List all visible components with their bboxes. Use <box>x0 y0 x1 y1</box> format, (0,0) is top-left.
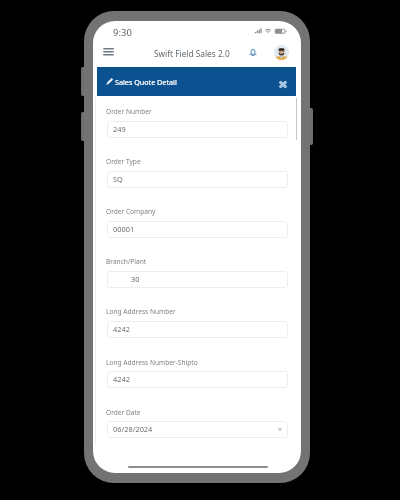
button[interactable]: 00001 <box>107 221 288 238</box>
button[interactable]: Menu <box>97 41 119 63</box>
staticText: × <box>278 425 283 435</box>
staticText: 06/28/2024 <box>113 424 153 434</box>
staticText: Long Address Number-Shipto <box>106 358 198 367</box>
staticText: Sales Quote Detail <box>115 77 177 87</box>
staticText: Order Type <box>106 157 141 166</box>
staticText: 249 <box>113 124 126 134</box>
staticText: Order Company <box>106 207 156 216</box>
button[interactable]: 06/28/2024 <box>107 421 288 438</box>
staticText: 30 <box>131 274 140 284</box>
staticText: 4242 <box>113 374 130 384</box>
button[interactable]: 4242 <box>107 321 288 338</box>
staticText: 4242 <box>113 324 130 334</box>
staticText: Swift Field Sales 2.0 <box>154 48 230 59</box>
staticText: Order Number <box>106 107 152 116</box>
button[interactable]: 30 <box>107 271 288 288</box>
button[interactable]: 4242 <box>107 371 288 388</box>
button[interactable]: SQ <box>107 171 288 188</box>
staticText: Long Address Number <box>106 307 176 316</box>
button[interactable]: Profile <box>274 45 289 60</box>
button[interactable]: Sales Quote Detail <box>97 67 296 96</box>
button[interactable]: 249 <box>107 121 288 138</box>
staticText: 9:30 <box>113 26 132 39</box>
staticText: Branch/Plant <box>106 257 147 266</box>
button[interactable]: Close <box>276 77 290 91</box>
button[interactable]: Notifications <box>243 42 263 62</box>
staticText: SQ <box>113 174 123 184</box>
staticText: 00001 <box>113 224 135 234</box>
staticText: Order Date <box>106 408 141 417</box>
